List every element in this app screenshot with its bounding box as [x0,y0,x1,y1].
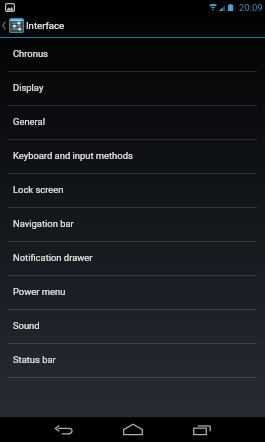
button[interactable]: Power menu [0,276,265,310]
staticText: 20:09 [239,2,263,13]
staticText: Notification drawer [13,252,93,263]
button[interactable]: Keyboard and input methods [0,140,265,174]
button[interactable]: Back [29,417,98,442]
staticText: Keyboard and input methods [13,150,133,161]
button[interactable]: Notification drawer [0,242,265,276]
button[interactable]: Sound [0,310,265,344]
button[interactable]: Chronus [0,38,265,72]
staticText: Power menu [13,286,66,297]
staticText: Sound [13,320,40,331]
button[interactable]: Navigate up [0,14,265,36]
staticText: Lock screen [13,184,64,195]
button[interactable]: Recent apps [167,417,236,442]
button[interactable]: Home [98,417,167,442]
staticText: Display [13,82,44,93]
button[interactable]: General [0,106,265,140]
staticText: General [13,116,45,127]
button[interactable]: Display [0,72,265,106]
button[interactable]: Status bar [0,344,265,378]
staticText: Navigation bar [13,218,74,229]
staticText: Chronus [13,48,48,59]
button[interactable]: Lock screen [0,174,265,208]
button[interactable]: Navigation bar [0,208,265,242]
staticText: Interface [26,20,65,31]
staticText: Status bar [13,354,56,365]
